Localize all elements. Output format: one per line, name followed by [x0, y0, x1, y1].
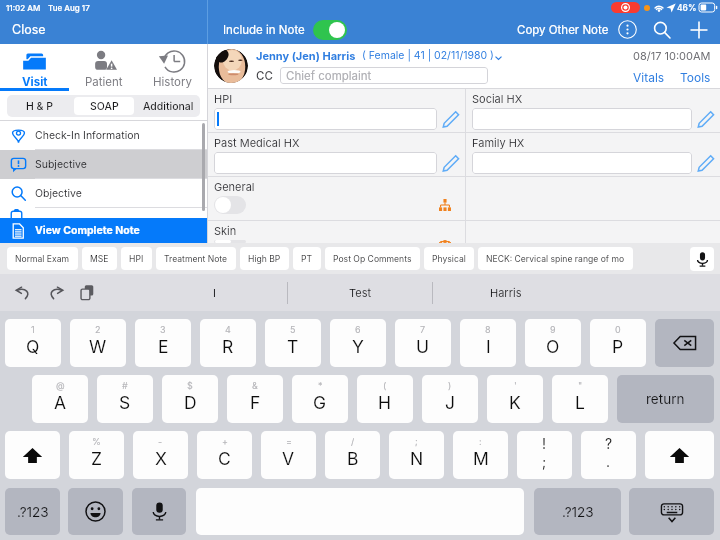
button[interactable]: Chief complaint [280, 67, 488, 84]
button[interactable]: HPI [121, 247, 152, 270]
staticText: B [347, 448, 359, 469]
button[interactable]: Visit [0, 44, 69, 91]
button[interactable]: 2 [70, 319, 126, 367]
button[interactable]: Additional [138, 97, 198, 115]
button[interactable]: ) [422, 375, 478, 423]
button[interactable]: return [617, 375, 714, 423]
staticText: @ [56, 380, 65, 391]
button[interactable]: Edit Past Medical HX [442, 154, 460, 172]
button[interactable]: High BP [240, 247, 289, 270]
button[interactable]: Close [0, 15, 207, 44]
button[interactable]: Hide keyboard [629, 488, 714, 535]
button[interactable]: Template tree [439, 240, 451, 243]
staticText: HPI [214, 92, 233, 105]
button[interactable]: Search [652, 20, 672, 40]
button[interactable]: PT [293, 247, 321, 270]
staticText: Family HX [472, 136, 525, 149]
button[interactable]: Physical [424, 247, 474, 270]
button[interactable]: Subjective [0, 150, 207, 179]
button[interactable]: Edit Social HX [697, 110, 715, 128]
button[interactable]: $ [162, 375, 218, 423]
button[interactable]: Add [689, 20, 709, 40]
button[interactable]: Tools [680, 70, 711, 85]
button[interactable]: MSE [82, 247, 117, 270]
button[interactable] [214, 108, 437, 130]
staticText: Subjective [35, 158, 87, 171]
button[interactable]: / [325, 431, 380, 479]
button[interactable]: Vitals [633, 70, 665, 85]
button[interactable]: Paste [79, 284, 96, 301]
button[interactable]: More options [618, 20, 637, 39]
staticText: Chief complaint [286, 69, 372, 83]
button[interactable]: # [97, 375, 153, 423]
button[interactable]: Edit Family HX [697, 154, 715, 172]
button[interactable]: Include in Note [313, 20, 347, 40]
button[interactable]: " [552, 375, 608, 423]
button[interactable]: View Complete Note [0, 218, 207, 243]
button[interactable]: General toggle [214, 196, 246, 214]
button[interactable]: Redo [46, 283, 66, 303]
button[interactable]: History [138, 44, 207, 91]
button[interactable]: H & P [9, 97, 70, 115]
button[interactable]: * [292, 375, 348, 423]
button[interactable]: Shift [645, 431, 714, 479]
button[interactable]: @ [32, 375, 88, 423]
button[interactable]: - [133, 431, 188, 479]
button[interactable]: Check-In Information [0, 121, 207, 150]
button[interactable] [214, 152, 437, 174]
button[interactable]: .?123 [534, 488, 621, 535]
button[interactable]: Normal Exam [7, 247, 78, 270]
button[interactable]: ! [517, 431, 572, 479]
button[interactable]: Emoji [68, 488, 123, 535]
staticText: ) [448, 380, 452, 391]
staticText: General [214, 180, 255, 193]
button[interactable]: 4 [200, 319, 256, 367]
button[interactable]: % [69, 431, 124, 479]
staticText: return [646, 391, 685, 407]
button[interactable]: : [453, 431, 508, 479]
button[interactable]: Delete [655, 319, 714, 367]
staticText: .?123 [562, 504, 594, 520]
button[interactable]: ( [357, 375, 413, 423]
button[interactable]: ? [581, 431, 636, 479]
button[interactable]: Copy Other Note [517, 23, 609, 37]
button[interactable]: Template tree [439, 199, 451, 211]
staticText: HPI [129, 254, 144, 264]
button[interactable] [472, 152, 692, 174]
button[interactable]: I [142, 274, 287, 311]
button[interactable]: Post Op Comments [325, 247, 420, 270]
button[interactable]: + [197, 431, 252, 479]
button[interactable]: ' [487, 375, 543, 423]
button[interactable]: Test [288, 274, 432, 311]
button[interactable]: 5 [265, 319, 321, 367]
button[interactable]: Patient [69, 44, 138, 91]
button[interactable]: 0 [590, 319, 646, 367]
button[interactable]: Treatment Note [156, 247, 236, 270]
button[interactable]: .?123 [5, 488, 60, 535]
button[interactable]: = [261, 431, 316, 479]
staticText: H & P [26, 100, 54, 113]
button[interactable]: Harris [433, 274, 578, 311]
button[interactable]: Objective [0, 179, 207, 208]
button[interactable]: 8 [460, 319, 516, 367]
button[interactable]: 6 [330, 319, 386, 367]
button[interactable]: Shift [5, 431, 60, 479]
button[interactable]: Skin toggle [214, 240, 246, 243]
button[interactable]: ; [389, 431, 444, 479]
button[interactable]: SOAP [74, 97, 134, 115]
staticText: 0 [615, 324, 621, 335]
button[interactable]: & [227, 375, 283, 423]
button[interactable]: 1 [5, 319, 61, 367]
button[interactable]: Edit HPI [442, 110, 460, 128]
staticText: 1 [31, 324, 35, 335]
button[interactable]: 3 [135, 319, 191, 367]
button[interactable] [472, 108, 692, 130]
button[interactable]: NECK: Cervical spine range of mo [478, 247, 633, 270]
button[interactable]: Dictate [690, 247, 714, 271]
staticText: I [213, 286, 216, 299]
button[interactable]: Undo [13, 283, 33, 303]
button[interactable]: Dictation [132, 488, 186, 535]
button[interactable]: 9 [525, 319, 581, 367]
button[interactable]: 7 [395, 319, 451, 367]
